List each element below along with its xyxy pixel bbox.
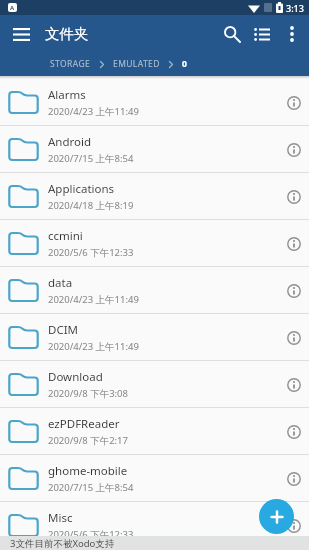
staticText: 2020/9/8 下午3:08: [48, 387, 128, 400]
button[interactable]: [247, 19, 277, 49]
button[interactable]: [279, 135, 309, 165]
staticText: Android: [48, 134, 92, 150]
button[interactable]: [279, 276, 309, 306]
staticText: 3:13: [286, 2, 304, 14]
staticText: ghome-mobile: [48, 463, 128, 479]
button[interactable]: [279, 88, 309, 118]
staticText: 2020/4/18 上午8:19: [48, 199, 134, 212]
button[interactable]: [279, 417, 309, 447]
button[interactable]: [279, 370, 309, 400]
staticText: 2020/7/15 上午8:54: [48, 152, 134, 165]
button[interactable]: [279, 182, 309, 212]
staticText: 3文件目前不被Xodo支持: [10, 537, 115, 550]
staticText: ezPDFReader: [48, 416, 120, 432]
button[interactable]: [279, 511, 309, 541]
staticText: 2020/4/23 上午11:49: [48, 340, 139, 353]
button[interactable]: data: [0, 267, 309, 314]
staticText: Applications: [48, 181, 115, 197]
button[interactable]: [259, 499, 294, 534]
button[interactable]: 0: [182, 58, 188, 70]
staticText: data: [48, 275, 73, 291]
button[interactable]: [217, 19, 247, 49]
button[interactable]: Android: [0, 126, 309, 173]
button[interactable]: Download: [0, 361, 309, 408]
staticText: Alarms: [48, 87, 86, 103]
staticText: 2020/4/23 上午11:49: [48, 293, 139, 306]
button[interactable]: [277, 19, 307, 49]
button[interactable]: Alarms: [0, 79, 309, 126]
staticText: 2020/5/6 下午12:33: [48, 246, 134, 259]
staticText: A: [10, 4, 15, 12]
button[interactable]: EMULATED: [113, 58, 160, 70]
button[interactable]: ezPDFReader: [0, 408, 309, 455]
staticText: 文件夹: [45, 25, 89, 43]
button[interactable]: ghome-mobile: [0, 455, 309, 502]
staticText: 2020/4/23 上午11:49: [48, 105, 139, 118]
button[interactable]: Applications: [0, 173, 309, 220]
button[interactable]: STORAGE: [50, 58, 91, 70]
staticText: Misc: [48, 510, 73, 526]
button[interactable]: Misc: [0, 502, 309, 549]
staticText: 2020/7/15 上午8:54: [48, 481, 134, 494]
button[interactable]: [279, 229, 309, 259]
button[interactable]: [279, 323, 309, 353]
staticText: Download: [48, 369, 103, 385]
button[interactable]: [279, 464, 309, 494]
staticText: ccmini: [48, 228, 83, 244]
button[interactable]: DCIM: [0, 314, 309, 361]
staticText: DCIM: [48, 322, 78, 338]
button[interactable]: [6, 19, 36, 49]
staticText: 2020/5/6 下午12:33: [48, 528, 134, 541]
button[interactable]: ccmini: [0, 220, 309, 267]
staticText: 2020/9/8 下午2:17: [48, 434, 128, 447]
